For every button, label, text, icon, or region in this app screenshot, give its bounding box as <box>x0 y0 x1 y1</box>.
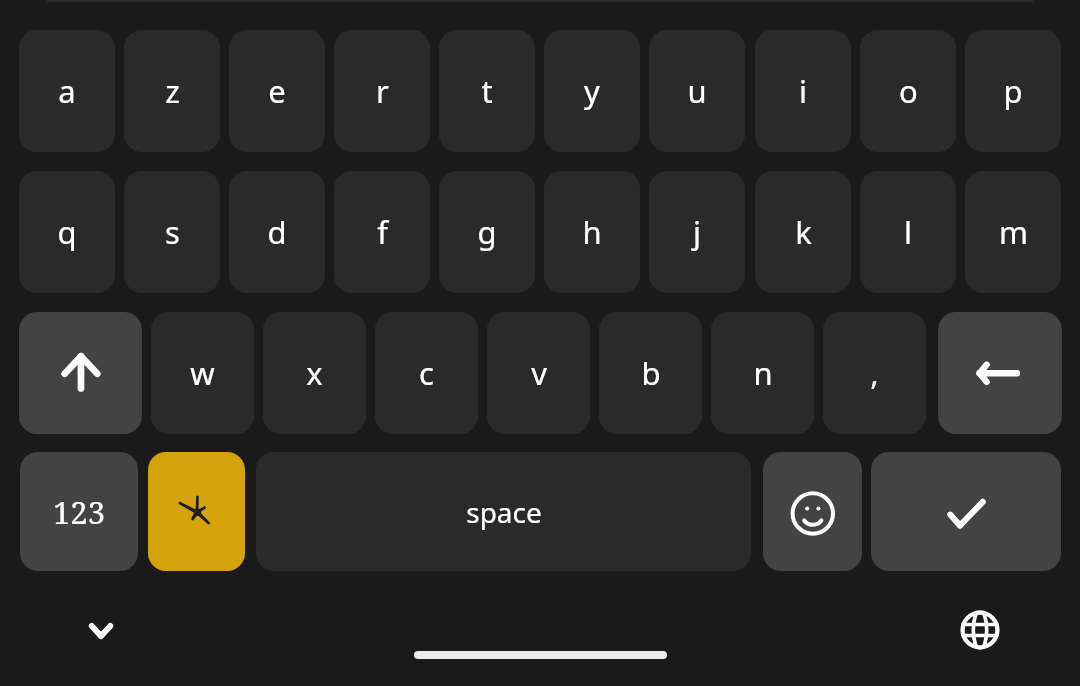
button[interactable]: x <box>263 312 366 434</box>
staticText: x <box>306 352 323 394</box>
button[interactable]: h <box>544 171 640 293</box>
staticText: p <box>1003 70 1023 112</box>
staticText: i <box>799 70 807 112</box>
staticText: g <box>477 211 497 253</box>
staticText: r <box>376 70 389 112</box>
staticText: , <box>870 352 879 394</box>
button[interactable]: f <box>334 171 430 293</box>
button[interactable]: j <box>649 171 745 293</box>
button[interactable]: w <box>151 312 254 434</box>
staticText: z <box>165 70 180 112</box>
staticText: q <box>57 211 77 253</box>
staticText: l <box>904 211 912 253</box>
button[interactable]: 123 <box>20 452 138 571</box>
button[interactable]: z <box>124 30 220 152</box>
button[interactable]: r <box>334 30 430 152</box>
staticText: space <box>466 493 542 531</box>
staticText: a <box>58 70 76 112</box>
button[interactable]: t <box>439 30 535 152</box>
staticText: e <box>268 70 286 112</box>
button[interactable]: space <box>256 452 751 571</box>
button[interactable]: s <box>124 171 220 293</box>
button[interactable]: Change keyboard language <box>940 590 1020 670</box>
staticText: f <box>377 211 388 253</box>
button[interactable]: Enter <box>871 452 1061 571</box>
staticText: t <box>481 70 493 112</box>
button[interactable]: q <box>19 171 115 293</box>
staticText: v <box>531 352 547 394</box>
button[interactable]: c <box>375 312 478 434</box>
button[interactable]: i <box>755 30 851 152</box>
button[interactable]: m <box>965 171 1061 293</box>
staticText: b <box>641 352 661 394</box>
button[interactable]: u <box>649 30 745 152</box>
staticText: h <box>582 211 602 253</box>
staticText: j <box>693 211 701 253</box>
staticText: y <box>584 70 600 112</box>
button[interactable]: o <box>860 30 956 152</box>
button[interactable]: e <box>229 30 325 152</box>
button[interactable]: d <box>229 171 325 293</box>
staticText: s <box>165 211 180 253</box>
button[interactable]: k <box>755 171 851 293</box>
button[interactable]: y <box>544 30 640 152</box>
button[interactable]: a <box>19 30 115 152</box>
staticText: c <box>419 352 434 394</box>
staticText: w <box>190 352 215 394</box>
button[interactable]: g <box>439 171 535 293</box>
staticText: u <box>687 70 707 112</box>
staticText: 123 <box>53 491 105 533</box>
button[interactable]: l <box>860 171 956 293</box>
button[interactable]: Special characters <box>148 452 245 571</box>
staticText: m <box>999 211 1028 253</box>
button[interactable]: v <box>487 312 590 434</box>
button[interactable]: Emoji <box>763 452 862 571</box>
button[interactable]: p <box>965 30 1061 152</box>
button[interactable]: Backspace <box>938 312 1062 434</box>
button[interactable]: n <box>711 312 814 434</box>
button[interactable]: , <box>823 312 926 434</box>
button[interactable]: b <box>599 312 702 434</box>
button[interactable]: Hide keyboard <box>61 591 141 671</box>
staticText: n <box>753 352 773 394</box>
staticText: d <box>267 211 287 253</box>
staticText: o <box>899 70 918 112</box>
button[interactable]: Shift <box>19 312 142 434</box>
staticText: k <box>795 211 812 253</box>
